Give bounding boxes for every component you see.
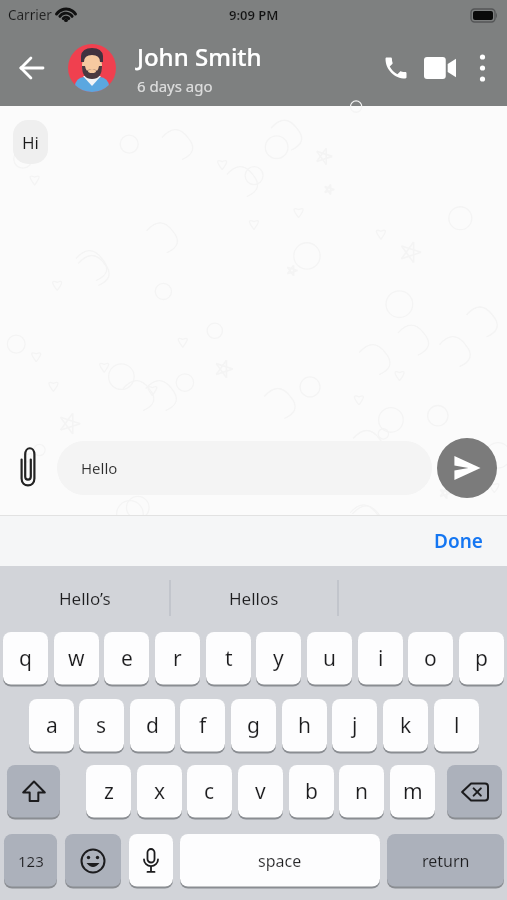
staticText: b bbox=[305, 777, 318, 806]
staticText: Hi bbox=[22, 131, 39, 154]
staticText: return bbox=[422, 850, 470, 872]
button[interactable]: v bbox=[238, 765, 283, 818]
staticText: c bbox=[204, 777, 215, 806]
button[interactable]: return bbox=[387, 834, 504, 887]
button[interactable]: p bbox=[459, 632, 504, 685]
button[interactable]: l bbox=[434, 699, 479, 752]
staticText: Done bbox=[434, 528, 483, 554]
button[interactable]: d bbox=[130, 699, 175, 752]
button[interactable]: o bbox=[408, 632, 453, 685]
button[interactable] bbox=[447, 765, 502, 818]
staticText: d bbox=[146, 711, 159, 740]
button[interactable] bbox=[129, 834, 173, 887]
staticText: space bbox=[258, 850, 302, 872]
staticText: Carrier bbox=[8, 6, 52, 24]
button[interactable]: c bbox=[187, 765, 232, 818]
button[interactable] bbox=[7, 765, 60, 818]
staticText: w bbox=[68, 644, 85, 673]
button[interactable]: Done bbox=[423, 521, 493, 561]
staticText: q bbox=[19, 644, 32, 673]
button[interactable] bbox=[10, 46, 54, 90]
button[interactable] bbox=[437, 438, 497, 498]
staticText: f bbox=[199, 711, 207, 740]
button[interactable]: a bbox=[29, 699, 74, 752]
button[interactable]: j bbox=[332, 699, 377, 752]
staticText: x bbox=[154, 777, 166, 806]
button[interactable] bbox=[419, 47, 461, 89]
button[interactable]: z bbox=[86, 765, 131, 818]
staticText: y bbox=[273, 644, 284, 673]
staticText: a bbox=[46, 711, 58, 740]
button[interactable] bbox=[8, 441, 48, 495]
button[interactable]: space bbox=[180, 834, 380, 887]
button[interactable]: r bbox=[155, 632, 200, 685]
staticText: k bbox=[400, 711, 412, 740]
staticText: Hellos bbox=[229, 587, 279, 610]
button[interactable]: y bbox=[256, 632, 301, 685]
staticText: l bbox=[454, 711, 460, 740]
button[interactable]: m bbox=[390, 765, 435, 818]
button[interactable]: g bbox=[231, 699, 276, 752]
button[interactable]: k bbox=[383, 699, 428, 752]
button[interactable]: Hellos bbox=[170, 566, 338, 630]
button[interactable]: 123 bbox=[4, 834, 57, 887]
staticText: m bbox=[403, 777, 423, 806]
staticText: u bbox=[323, 644, 336, 673]
staticText: 6 days ago bbox=[137, 76, 213, 96]
staticText: i bbox=[378, 644, 384, 673]
staticText: 9:09 PM bbox=[229, 6, 279, 24]
staticText: j bbox=[352, 711, 358, 740]
staticText: o bbox=[424, 644, 437, 673]
staticText: Hello’s bbox=[59, 587, 111, 610]
staticText: Hello bbox=[81, 458, 118, 478]
button[interactable] bbox=[65, 834, 121, 887]
button[interactable]: s bbox=[79, 699, 124, 752]
staticText: n bbox=[355, 777, 368, 806]
button[interactable]: q bbox=[3, 632, 48, 685]
button[interactable] bbox=[467, 53, 497, 83]
button[interactable] bbox=[375, 47, 417, 89]
button[interactable]: b bbox=[289, 765, 334, 818]
button[interactable]: e bbox=[104, 632, 149, 685]
button[interactable]: x bbox=[137, 765, 182, 818]
staticText: p bbox=[475, 644, 488, 673]
staticText: g bbox=[247, 711, 260, 740]
staticText: t bbox=[225, 644, 233, 673]
button[interactable]: Hello’s bbox=[0, 566, 170, 630]
staticText: h bbox=[298, 711, 311, 740]
staticText: r bbox=[173, 644, 182, 673]
button[interactable]: f bbox=[180, 699, 225, 752]
staticText: z bbox=[104, 777, 114, 806]
button[interactable]: h bbox=[282, 699, 327, 752]
staticText: John Smith bbox=[137, 40, 262, 73]
button[interactable]: Hello bbox=[57, 441, 432, 495]
button[interactable]: i bbox=[358, 632, 403, 685]
button[interactable]: w bbox=[54, 632, 99, 685]
button[interactable]: n bbox=[339, 765, 384, 818]
button[interactable]: t bbox=[206, 632, 251, 685]
button[interactable]: u bbox=[307, 632, 352, 685]
staticText: e bbox=[121, 644, 133, 673]
staticText: v bbox=[255, 777, 266, 806]
staticText: s bbox=[96, 711, 107, 740]
staticText: 123 bbox=[18, 851, 44, 871]
